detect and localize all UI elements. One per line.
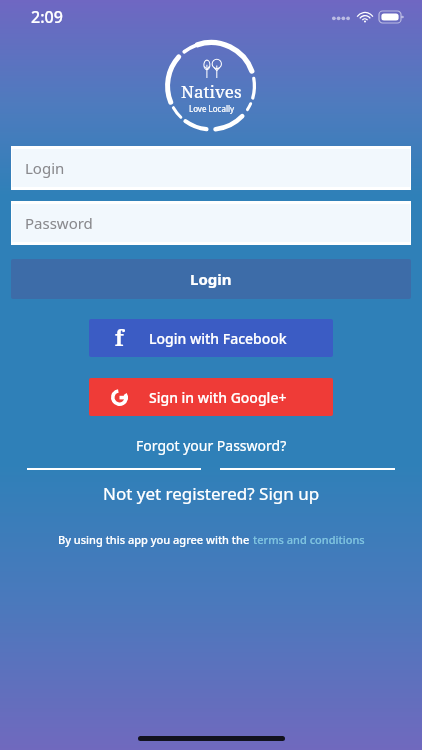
button[interactable]: Forgot your Password?	[0, 436, 422, 455]
button[interactable]: terms and conditions	[253, 532, 365, 547]
staticText: terms and conditions	[253, 532, 365, 547]
button[interactable]: Not yet registered? Sign up	[0, 482, 422, 505]
staticText: Sign in with Google+	[149, 388, 287, 407]
button[interactable]: Google	[89, 378, 333, 416]
staticText: Love Locally	[189, 103, 235, 114]
staticText: Not yet registered? Sign up	[103, 482, 320, 505]
staticText: Natives	[181, 80, 242, 103]
staticText: Login with Facebook	[149, 329, 287, 348]
button[interactable]: Login	[12, 149, 410, 187]
other: Google	[111, 389, 128, 406]
staticText: 2:09	[31, 6, 63, 28]
button[interactable]: Password	[12, 204, 410, 242]
staticText: Password	[25, 213, 93, 233]
button[interactable]: Facebook	[89, 319, 333, 357]
staticText: By using this app you agree with the	[58, 532, 253, 547]
staticText: f	[115, 324, 124, 353]
staticText: Login	[190, 269, 232, 289]
staticText: Login	[25, 158, 65, 178]
button[interactable]: Login	[11, 259, 411, 299]
staticText: Forgot your Password?	[136, 436, 287, 455]
